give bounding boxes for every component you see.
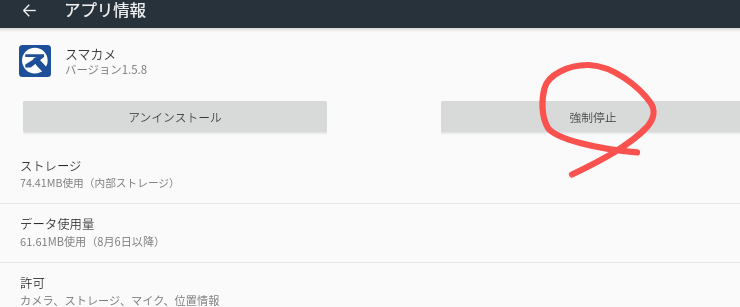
staticText: データ使用量 — [20, 215, 95, 233]
button[interactable]: 許可 — [0, 270, 740, 307]
button[interactable]: 強制停止 — [441, 101, 740, 132]
button[interactable]: ストレージ — [0, 153, 740, 190]
staticText: アンインストール — [128, 108, 222, 125]
staticText: バージョン1.5.8 — [65, 61, 148, 78]
staticText: 61.61MB使用（8月6日以降） — [20, 233, 166, 249]
button[interactable]: データ使用量 — [0, 211, 740, 249]
staticText: カメラ、ストレージ、マイク、位置情報 — [20, 292, 220, 307]
button[interactable]: Back — [12, 0, 46, 28]
staticText: 許可 — [20, 274, 45, 292]
staticText: ストレージ — [20, 157, 82, 175]
staticText: 74.41MB使用（内部ストレージ） — [20, 175, 180, 190]
staticText: スマカメ — [65, 44, 117, 63]
button[interactable]: アンインストール — [23, 101, 327, 132]
staticText: 強制停止 — [569, 108, 617, 125]
staticText: アプリ情報 — [64, 0, 146, 21]
